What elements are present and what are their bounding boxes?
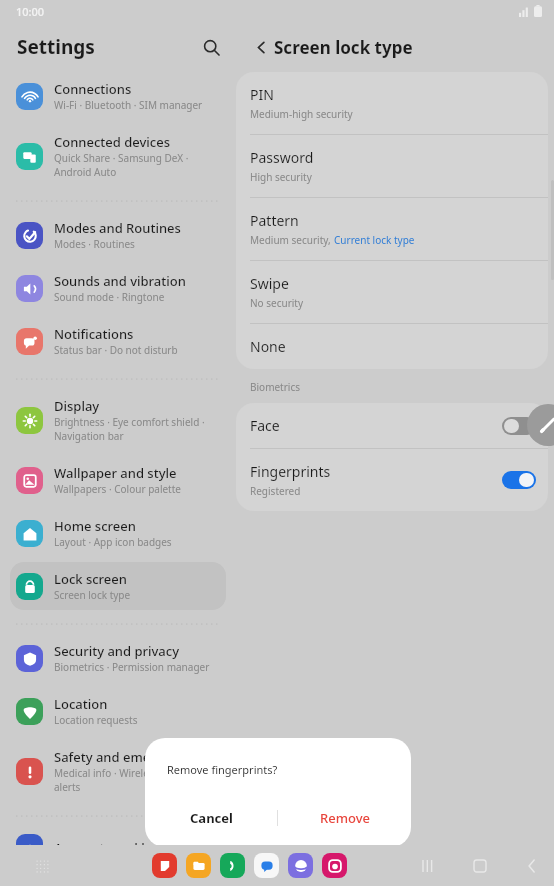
button[interactable]: Wallpaper and style [10,456,226,504]
button[interactable]: Pattern [236,198,548,260]
staticText: Pattern [250,211,299,230]
staticText: Home screen [54,517,136,535]
button[interactable]: None [236,324,548,369]
button[interactable]: Display [10,389,226,451]
button[interactable]: Password [236,135,548,197]
staticText: Accounts and backup [54,839,187,857]
button[interactable]: Edit [527,404,554,446]
staticText: 10:00 [16,4,45,19]
staticText: Status bar · Do not disturb [54,343,178,357]
button[interactable]: Fingerprints toggle [502,471,536,489]
button[interactable]: App [220,853,245,878]
button[interactable]: Connected devices [10,125,226,187]
staticText: Layout · App icon badges [54,535,172,549]
button[interactable]: Home screen [10,509,226,557]
button[interactable]: Search [194,30,228,64]
button[interactable]: Notifications [10,317,226,365]
button[interactable]: Face [236,403,548,448]
button[interactable]: Sounds and vibration [10,264,226,312]
staticText: Connected devices [54,133,171,151]
staticText: Registered [250,484,301,498]
button[interactable]: Cancel [145,797,277,839]
staticText: Security and privacy [54,642,180,660]
staticText: Remove fingerprints? [167,762,278,777]
button[interactable]: Home [466,852,494,880]
staticText: Swipe [250,274,289,293]
staticText: Modes · Routines [54,237,135,251]
staticText: Navigation bar [54,429,124,443]
staticText: PIN [250,85,274,104]
staticText: Wallpapers · Colour palette [54,482,181,496]
button[interactable]: Swipe [236,261,548,323]
staticText: Wallpaper and style [54,464,177,482]
staticText: Password [250,148,314,167]
staticText: Location [54,695,108,713]
staticText: Modes and Routines [54,219,181,237]
button[interactable]: Location [10,687,226,735]
button[interactable]: App [254,853,279,878]
button[interactable]: Connections [10,72,226,120]
staticText: Lock screen [54,570,127,588]
button[interactable]: Back [518,852,546,880]
staticText: Connections [54,80,132,98]
button[interactable]: Lock screen [10,562,226,610]
staticText: Quick Share · Samsung DeX · [54,151,189,165]
staticText: Location requests [54,713,138,727]
staticText: Medium security, [250,233,334,247]
staticText: Sounds and vibration [54,272,186,290]
staticText: Brightness · Eye comfort shield · [54,415,205,429]
staticText: Sound mode · Ringtone [54,290,165,304]
button[interactable]: Safety and emerg [10,740,226,802]
staticText: No security [250,296,304,310]
staticText: Biometrics [250,380,301,394]
staticText: Android Auto [54,165,117,179]
staticText: Settings [17,34,95,60]
staticText: None [250,337,286,356]
button[interactable]: App [152,853,177,878]
button[interactable]: Remove [278,797,411,839]
button[interactable]: App [186,853,211,878]
button[interactable]: Security and privacy [10,634,226,682]
button[interactable]: Back [244,30,278,64]
button[interactable]: App [288,853,313,878]
button[interactable]: Face toggle [502,417,536,435]
staticText: Notifications [54,325,134,343]
staticText: Medical info · Wireles [54,766,154,780]
staticText: Biometrics · Permission manager [54,660,210,674]
staticText: Screen lock type [54,588,131,602]
staticText: Cancel [190,809,233,827]
button[interactable]: Recents [414,852,442,880]
staticText: Display [54,397,100,415]
staticText: Face [250,416,280,435]
button[interactable]: App [322,853,347,878]
staticText: Safety and emerg [54,748,164,766]
staticText: High security [250,170,312,184]
staticText: alerts [54,780,81,794]
staticText: Fingerprints [250,462,331,481]
button[interactable]: PIN [236,72,548,134]
staticText: Screen lock type [274,36,413,59]
staticText: Medium-high security [250,107,353,121]
staticText: Current lock type [334,233,415,247]
button[interactable]: Accounts and backup [10,826,226,869]
staticText: Remove [320,809,370,827]
button[interactable]: Modes and Routines [10,211,226,259]
button[interactable]: Fingerprints [236,449,548,511]
staticText: Wi-Fi · Bluetooth · SIM manager [54,98,203,112]
